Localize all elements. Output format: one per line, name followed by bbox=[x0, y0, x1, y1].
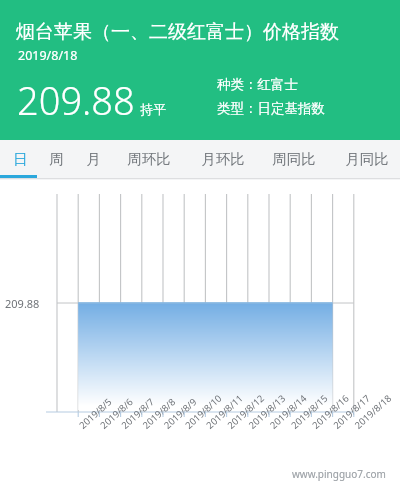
staticText: 类型：日定基指数 bbox=[217, 100, 325, 117]
button[interactable]: 日 bbox=[13, 140, 28, 178]
staticText: 周同比 bbox=[272, 150, 316, 168]
button[interactable]: 周环比 bbox=[126, 140, 171, 178]
staticText: 月 bbox=[86, 150, 101, 168]
button[interactable]: 月 bbox=[86, 140, 101, 178]
staticText: 日 bbox=[13, 150, 28, 168]
button[interactable]: 月环比 bbox=[200, 140, 245, 178]
staticText: 持平 bbox=[140, 101, 166, 117]
button[interactable]: 周同比 bbox=[271, 140, 316, 178]
button[interactable]: 月同比 bbox=[344, 140, 389, 178]
button[interactable]: 周 bbox=[49, 140, 64, 178]
staticText: 月同比 bbox=[345, 150, 389, 168]
staticText: 周 bbox=[49, 150, 64, 168]
staticText: 209.88 bbox=[17, 74, 135, 126]
staticText: 2019/8/18 bbox=[18, 47, 78, 64]
staticText: 烟台苹果（一、二级红富士）价格指数 bbox=[16, 20, 339, 44]
staticText: 种类：红富士 bbox=[217, 76, 298, 93]
staticText: 月环比 bbox=[201, 150, 245, 168]
staticText: 周环比 bbox=[127, 150, 171, 168]
